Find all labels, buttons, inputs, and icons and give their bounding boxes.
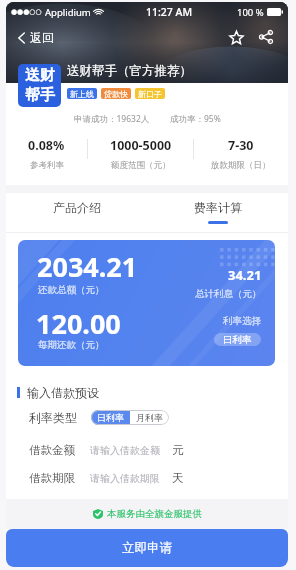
staticText: 日利率 <box>97 412 124 423</box>
staticText: 本服务由全旗金服提供 <box>107 508 202 520</box>
staticText: 7-30 <box>228 137 254 154</box>
staticText: 请输入借款金额 <box>90 444 160 457</box>
staticText: 请输入借款期限 <box>90 472 160 485</box>
staticText: 1000-5000 <box>110 137 172 154</box>
staticText: 费率计算 <box>194 200 242 215</box>
staticText: 申请成功：19632人 <box>74 113 150 125</box>
button[interactable]: 月利率 <box>130 410 169 425</box>
staticText: 日利率 <box>223 334 252 346</box>
button[interactable]: 送财 <box>18 64 61 107</box>
staticText: 总计利息（元） <box>195 288 262 300</box>
staticText: 100 % <box>237 6 264 19</box>
staticText: 天 <box>172 471 184 485</box>
button[interactable]: Share <box>254 25 278 49</box>
staticText: 还款总额（元） <box>38 284 105 296</box>
button[interactable]: Favorite <box>224 25 248 49</box>
staticText: 120.00 <box>36 305 121 342</box>
staticText: 利率选择 <box>223 315 261 327</box>
staticText: 参考利率 <box>30 160 64 171</box>
staticText: 元 <box>172 443 184 457</box>
button[interactable]: 日利率 <box>91 410 130 425</box>
button[interactable]: 费率计算 <box>147 193 288 233</box>
button[interactable]: 立即申请 <box>6 529 288 567</box>
staticText: 成功率：95% <box>170 113 221 125</box>
staticText: 放款期限（日） <box>211 160 271 171</box>
staticText: 利率类型 <box>29 410 77 425</box>
staticText: 0.08% <box>28 137 65 154</box>
staticText: 输入借款预设 <box>27 385 99 400</box>
staticText: 额度范围（元） <box>111 160 171 171</box>
staticText: 11:27 AM <box>146 5 193 19</box>
staticText: Applidium <box>45 6 91 19</box>
staticText: 立即申请 <box>122 540 172 556</box>
staticText: ●●●○○ <box>11 8 42 16</box>
staticText: 帮手 <box>25 86 55 105</box>
button[interactable]: 产品介绍 <box>6 193 147 233</box>
staticText: 借款期限 <box>29 471 75 485</box>
staticText: 贷款快 <box>104 89 128 99</box>
staticText: 借款金额 <box>29 443 75 457</box>
staticText: 每期还款（元） <box>38 339 105 351</box>
button[interactable]: 日利率 <box>214 333 261 346</box>
staticText: 送财 <box>25 66 55 85</box>
staticText: 月利率 <box>136 412 163 423</box>
staticText: 新口子 <box>138 89 162 99</box>
staticText: 34.21 <box>228 266 262 284</box>
staticText: 返回 <box>30 30 54 45</box>
staticText: 新上线 <box>70 89 94 99</box>
button[interactable]: 返回 <box>14 26 58 49</box>
staticText: 2034.21 <box>37 248 138 285</box>
staticText: 产品介绍 <box>53 200 101 215</box>
staticText: 送财帮手（官方推荐） <box>67 63 192 79</box>
